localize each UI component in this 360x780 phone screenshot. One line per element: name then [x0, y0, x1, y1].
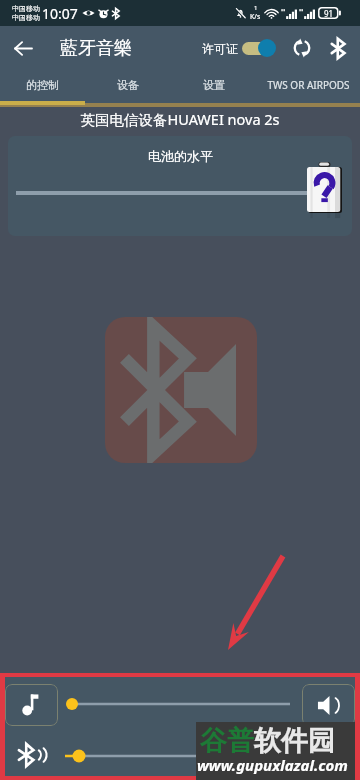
staticText: 设置: [203, 78, 225, 92]
staticText: 91: [324, 8, 334, 19]
button[interactable]: TWS OR AIRPODS: [257, 70, 360, 100]
staticText: 中国移动: [12, 4, 40, 13]
staticText: 软件园: [254, 724, 335, 758]
staticText: 设备: [117, 78, 139, 92]
button[interactable]: 设置: [171, 70, 257, 100]
button[interactable]: Back: [0, 26, 46, 70]
staticText: TWS OR AIRPODS: [267, 78, 350, 92]
button[interactable]: 许可证: [200, 39, 280, 57]
staticText: 英国电信设备HUAWEI nova 2s: [0, 109, 360, 129]
button[interactable]: Volume: [302, 684, 355, 726]
button[interactable]: 设备: [85, 70, 171, 100]
staticText: www.gupuxlazal.com: [197, 755, 348, 775]
staticText: 许可证: [202, 41, 238, 56]
button[interactable]: Bluetooth audio: [13, 737, 49, 773]
staticText: 的控制: [26, 78, 59, 92]
button[interactable]: 的控制: [0, 70, 85, 100]
staticText: 中国移动: [12, 13, 40, 22]
staticText: 10:07: [42, 4, 78, 23]
button[interactable]: Music: [5, 684, 58, 726]
staticText: K/s: [250, 12, 261, 22]
staticText: 藍牙音樂: [60, 37, 132, 60]
staticText: 电池的水平: [148, 148, 213, 164]
button[interactable]: Bluetooth: [320, 30, 356, 66]
staticText: 1: [254, 4, 258, 12]
staticText: 谷普: [200, 724, 254, 758]
button[interactable]: Refresh: [284, 30, 320, 66]
